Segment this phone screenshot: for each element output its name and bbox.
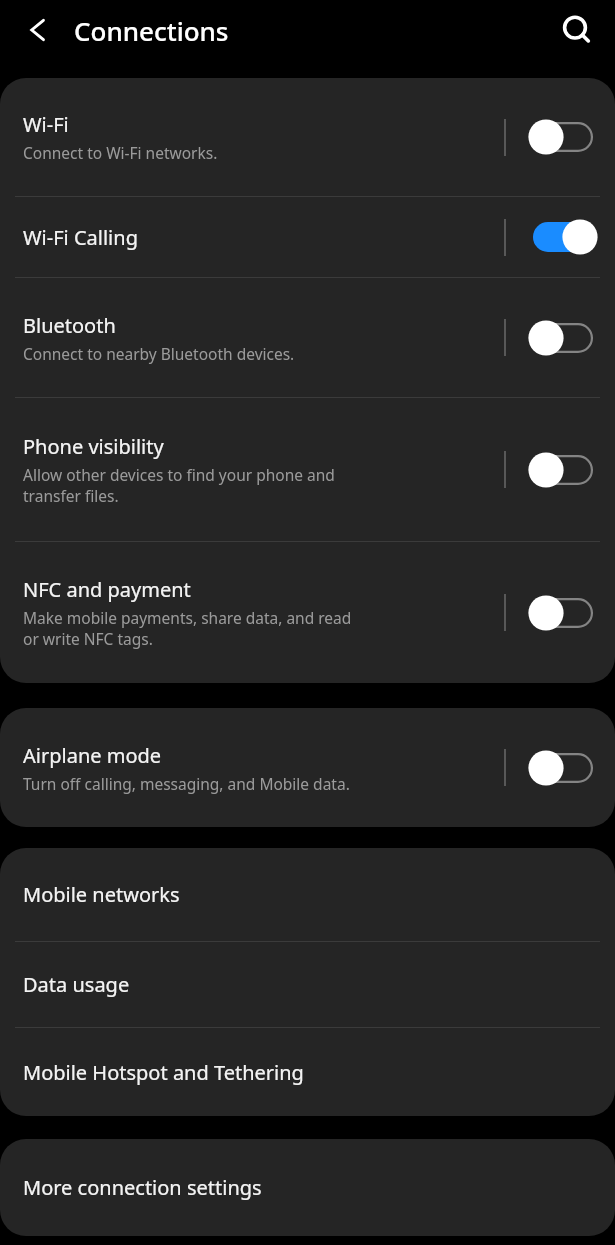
staticText: More connection settings [23, 1174, 262, 1201]
staticText: Connect to nearby Bluetooth devices. [23, 343, 295, 364]
button[interactable]: Bluetooth toggle [525, 316, 601, 360]
button[interactable]: Airplane mode [0, 708, 615, 827]
button[interactable]: Wi-Fi [0, 78, 615, 196]
button[interactable]: Airplane mode toggle [525, 746, 601, 790]
button[interactable]: Wi-Fi Calling [0, 197, 615, 277]
staticText: Mobile networks [23, 881, 180, 908]
button[interactable]: Data usage [0, 942, 615, 1027]
button[interactable]: NFC and payment toggle [525, 591, 601, 635]
button[interactable]: More connection settings [0, 1139, 615, 1236]
staticText: Airplane mode [23, 742, 162, 769]
staticText: Mobile Hotspot and Tethering [23, 1059, 304, 1086]
button[interactable]: Mobile networks [0, 848, 615, 941]
button[interactable]: Phone visibility toggle [525, 448, 601, 492]
staticText: Bluetooth [23, 312, 116, 339]
staticText: Make mobile payments, share data, and re… [23, 607, 352, 650]
button[interactable]: Wi-Fi toggle [525, 115, 601, 159]
staticText: Data usage [23, 971, 130, 998]
button[interactable]: Bluetooth [0, 278, 615, 397]
button[interactable]: Wi-Fi Calling toggle [525, 215, 601, 259]
staticText: Wi-Fi Calling [23, 224, 138, 251]
staticText: Connections [74, 13, 229, 48]
button[interactable]: NFC and payment [0, 542, 615, 683]
staticText: NFC and payment [23, 576, 191, 603]
staticText: Connect to Wi-Fi networks. [23, 142, 218, 163]
staticText: Turn off calling, messaging, and Mobile … [23, 773, 350, 794]
button[interactable]: Back [9, 6, 57, 54]
button[interactable]: Search [553, 6, 601, 54]
staticText: Phone visibility [23, 433, 164, 460]
staticText: Allow other devices to find your phone a… [23, 464, 335, 507]
button[interactable]: Phone visibility [0, 398, 615, 541]
staticText: Wi-Fi [23, 111, 69, 138]
button[interactable]: Mobile Hotspot and Tethering [0, 1028, 615, 1116]
